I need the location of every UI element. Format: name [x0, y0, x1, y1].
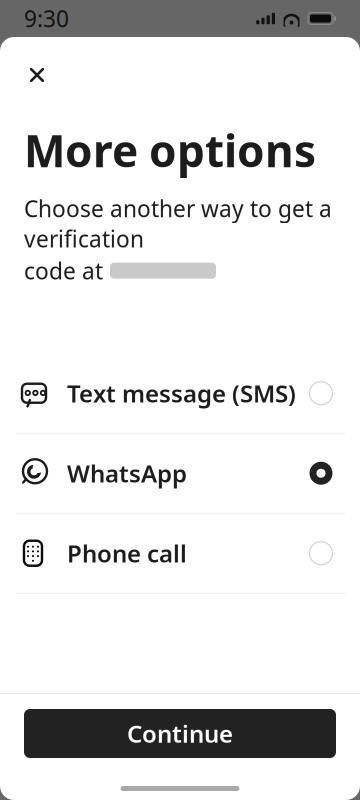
- staticText: Text message (SMS): [67, 377, 296, 409]
- button[interactable]: Continue: [24, 709, 336, 758]
- staticText: Continue: [127, 718, 233, 749]
- staticText: 9:30: [24, 3, 69, 33]
- staticText: Phone call: [67, 537, 187, 569]
- staticText: WhatsApp: [67, 457, 187, 489]
- staticText: code at: [24, 256, 103, 286]
- button[interactable]: Phone call: [0, 514, 360, 593]
- button[interactable]: Text message (SMS): [0, 354, 360, 433]
- staticText: Choose another way to get a verification: [24, 193, 332, 254]
- button[interactable]: WhatsApp: [0, 434, 360, 513]
- staticText: More options: [24, 121, 316, 179]
- button[interactable]: Close: [17, 55, 57, 95]
